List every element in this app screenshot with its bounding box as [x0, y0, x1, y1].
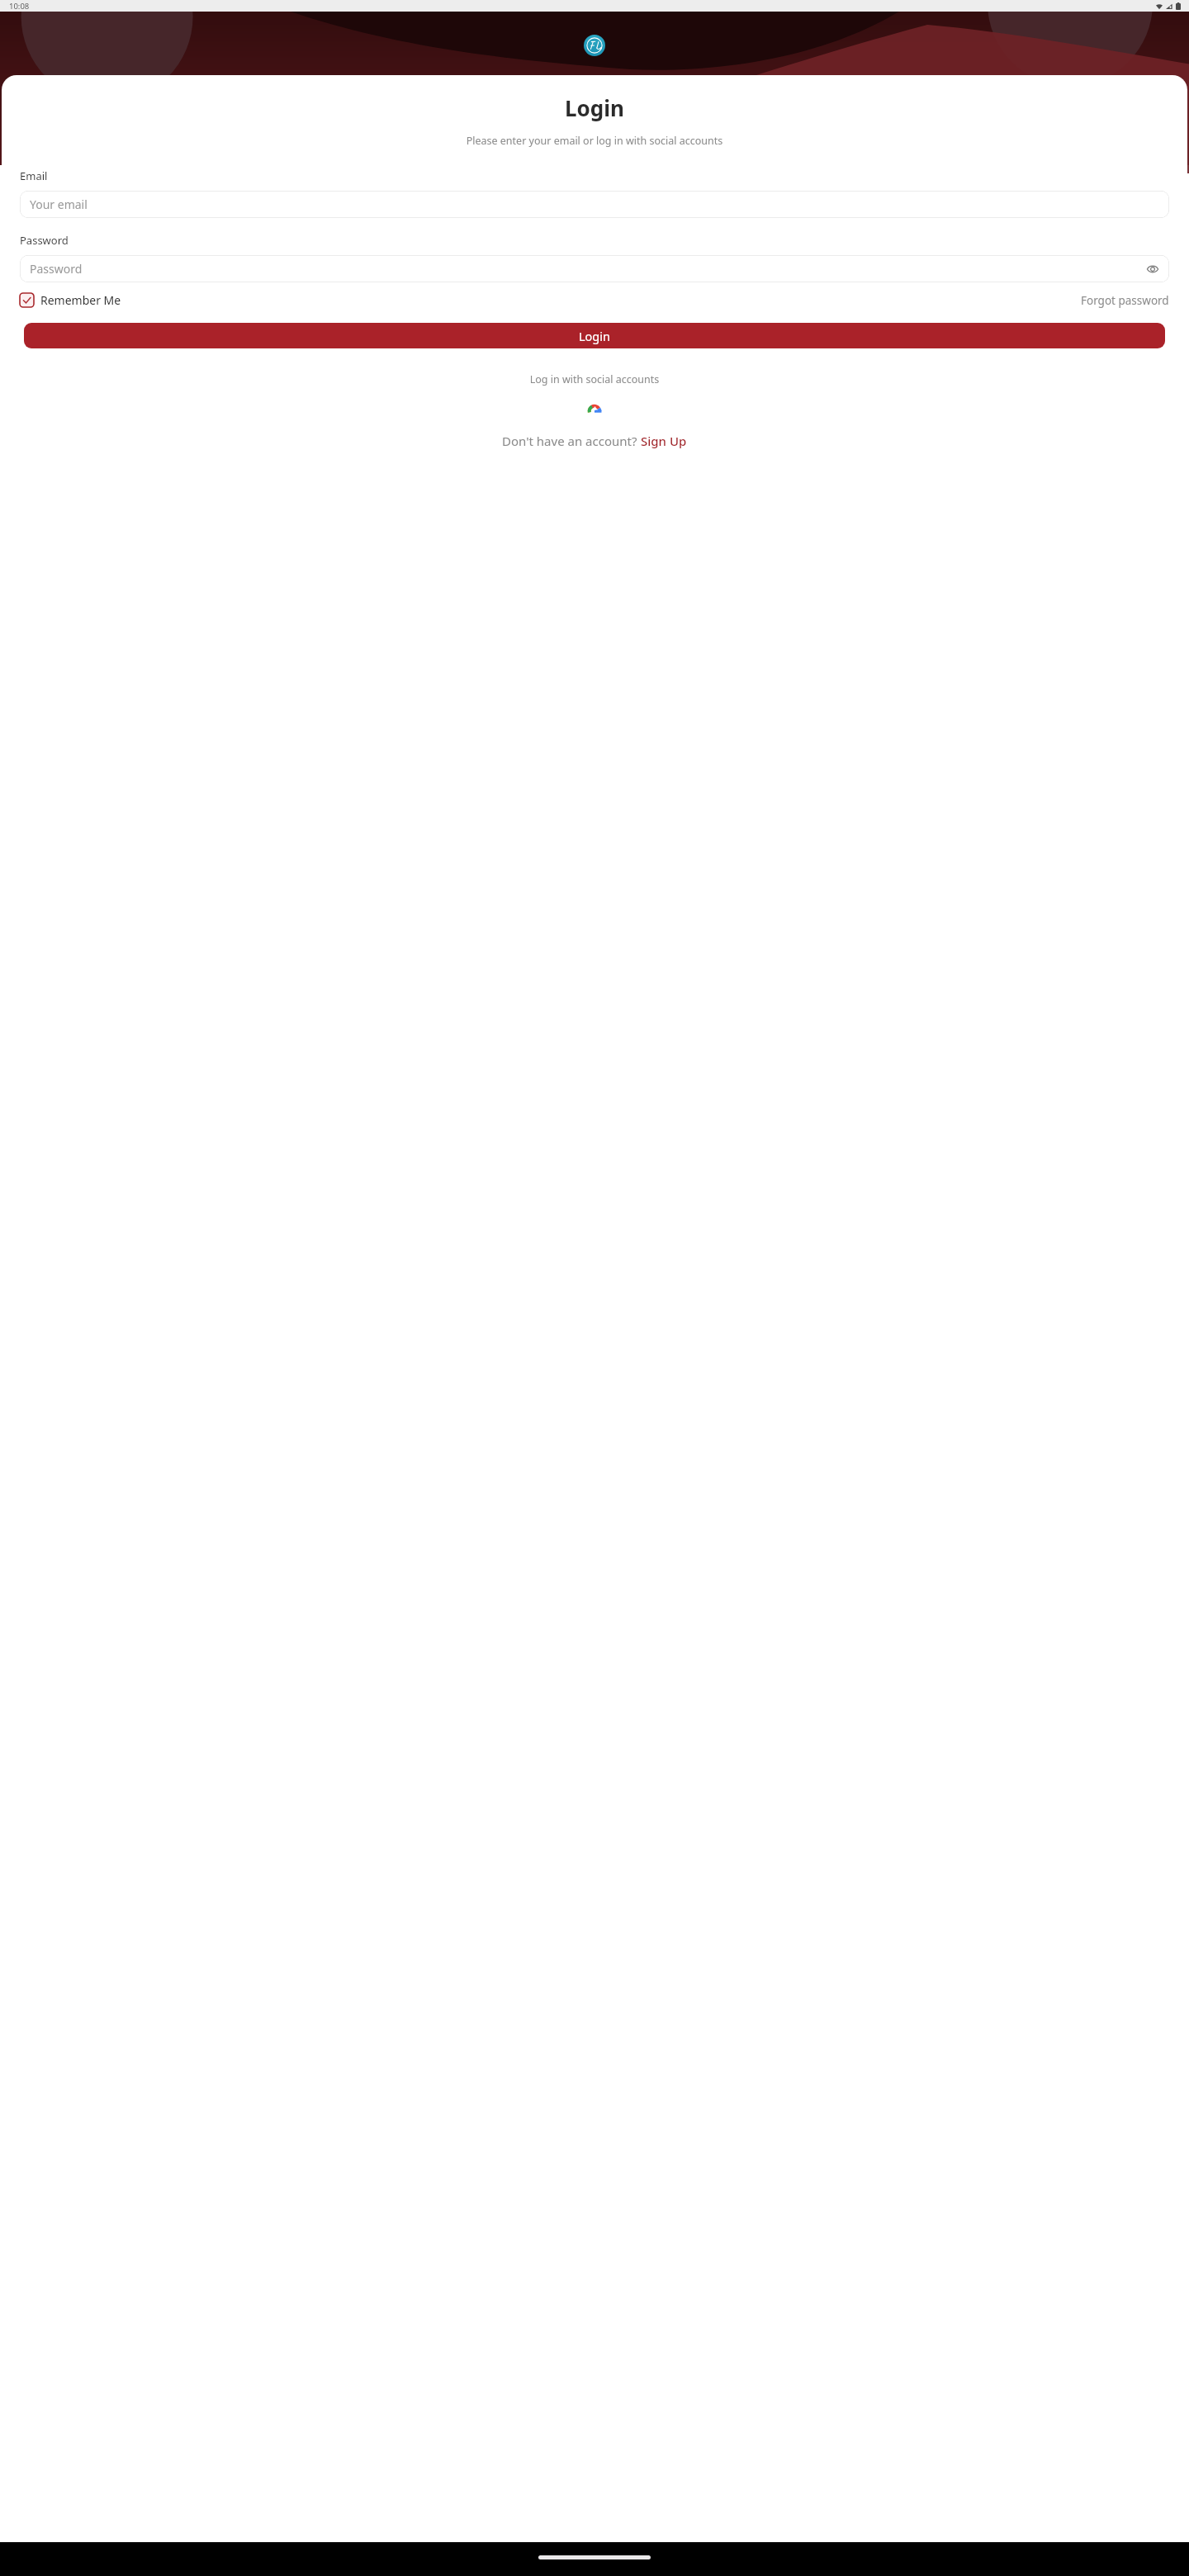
staticText: Login [2, 93, 1187, 122]
button[interactable]: Your email [20, 191, 1169, 218]
staticText: 10:08 [9, 1, 30, 12]
button[interactable]: Forgot password [1081, 293, 1169, 308]
button[interactable]: Remember Me [20, 292, 121, 308]
staticText: Password [30, 261, 83, 277]
staticText: Your email [30, 197, 88, 212]
staticText: Email [20, 168, 48, 183]
staticText: Forgot password [1081, 293, 1169, 308]
button[interactable]: Sign in with Google [580, 396, 609, 426]
staticText: Password [20, 233, 69, 248]
button[interactable]: Login [24, 323, 1165, 348]
staticText: Don't have an account? [502, 433, 641, 449]
staticText: Log in with social accounts [2, 372, 1187, 386]
staticText: Login [579, 328, 610, 344]
staticText: Remember Me [40, 292, 121, 308]
button[interactable]: Sign Up [641, 433, 687, 449]
button[interactable]: Password [20, 255, 1169, 282]
staticText: Please enter your email or log in with s… [10, 134, 1179, 148]
button[interactable]: Show password [1144, 261, 1161, 277]
staticText: Sign Up [641, 433, 687, 449]
